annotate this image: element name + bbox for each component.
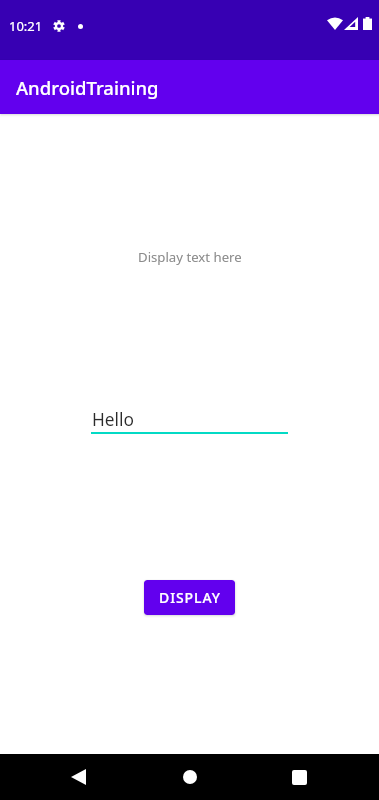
button[interactable]: Home [162, 754, 217, 800]
button[interactable]: DISPLAY [144, 580, 235, 615]
staticText: AndroidTraining [16, 75, 159, 100]
button[interactable]: Back [51, 754, 106, 800]
staticText: 10:21 [9, 17, 43, 35]
staticText: DISPLAY [159, 588, 221, 607]
button[interactable]: Recent apps [272, 754, 327, 800]
staticText: Hello [92, 408, 134, 432]
button[interactable]: Hello [91, 408, 288, 434]
staticText: Display text here [138, 248, 242, 266]
